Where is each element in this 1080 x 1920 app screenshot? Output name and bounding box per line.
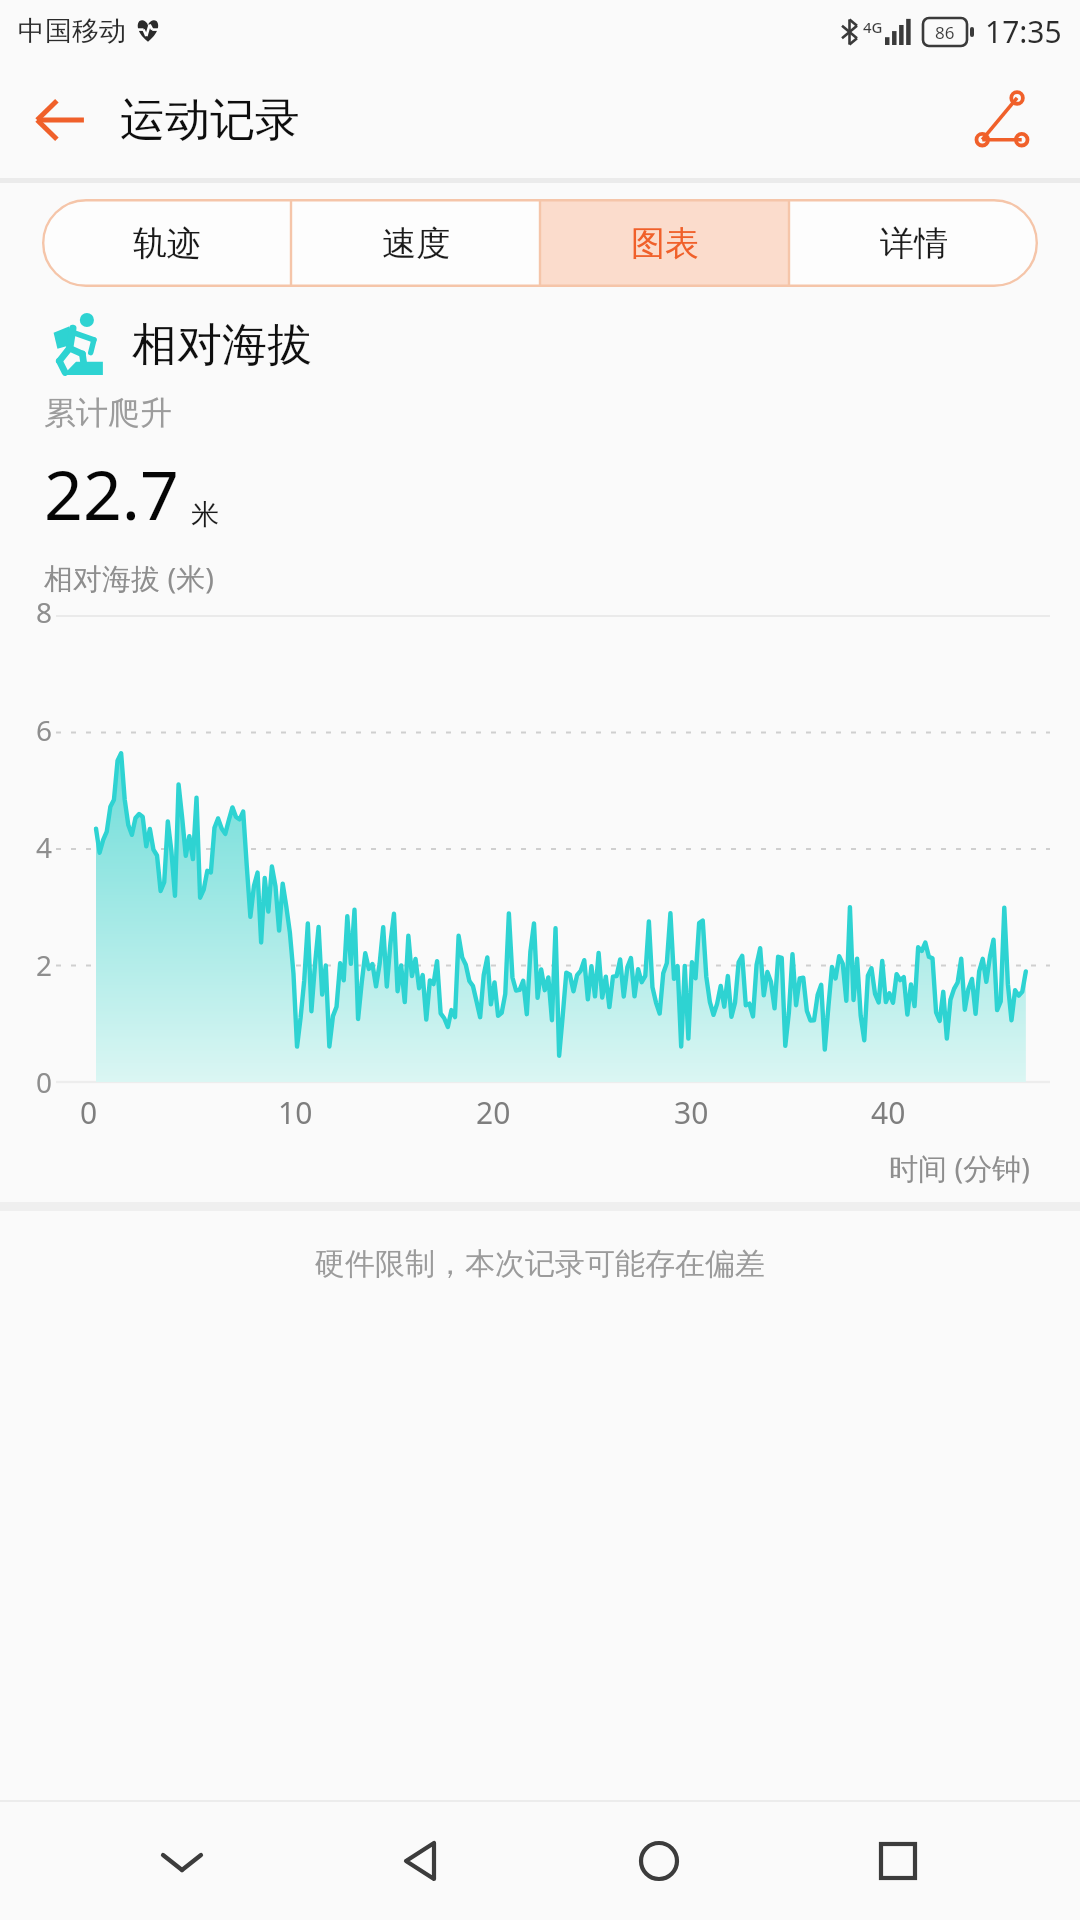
staticText: 2 (36, 946, 53, 984)
staticText: 6 (36, 711, 53, 749)
staticText: 22.7 (44, 447, 179, 540)
staticText: 轨迹 (133, 222, 201, 265)
staticText: 4G (863, 17, 883, 37)
button[interactable]: 返回 (0, 62, 120, 178)
button[interactable]: 轨迹 (42, 199, 291, 287)
staticText: 相对海拔 (132, 317, 312, 374)
staticText: 0 (80, 1092, 98, 1133)
staticText: 米 (191, 497, 219, 532)
button[interactable]: 分享 (954, 72, 1050, 168)
staticText: 硬件限制，本次记录可能存在偏差 (0, 1245, 1080, 1283)
staticText: 相对海拔 (米) (44, 558, 214, 598)
staticText: 8 (36, 593, 53, 631)
staticText: 4 (36, 828, 53, 866)
staticText: 时间 (分钟) (0, 1148, 1030, 1188)
staticText: 累计爬升 (44, 393, 172, 433)
staticText: 详情 (880, 222, 948, 265)
staticText: 10 (278, 1092, 313, 1133)
button[interactable]: 图表 (540, 199, 789, 287)
staticText: 20 (476, 1092, 511, 1133)
staticText: 图表 (631, 222, 699, 265)
staticText: 中国移动 (18, 14, 126, 48)
button[interactable]: 隐藏导航 (126, 1805, 238, 1917)
button[interactable]: 速度 (291, 199, 540, 287)
button[interactable]: 返回 (365, 1805, 477, 1917)
button[interactable]: 详情 (789, 199, 1038, 287)
staticText: 0 (36, 1063, 53, 1101)
staticText: 17:35 (985, 11, 1062, 52)
button[interactable]: 主屏幕 (603, 1805, 715, 1917)
staticText: 40 (871, 1092, 906, 1133)
staticText: 运动记录 (120, 92, 300, 149)
staticText: 速度 (382, 222, 450, 265)
staticText: 30 (674, 1092, 709, 1133)
staticText: 86 (935, 21, 955, 44)
button[interactable]: 最近任务 (842, 1805, 954, 1917)
